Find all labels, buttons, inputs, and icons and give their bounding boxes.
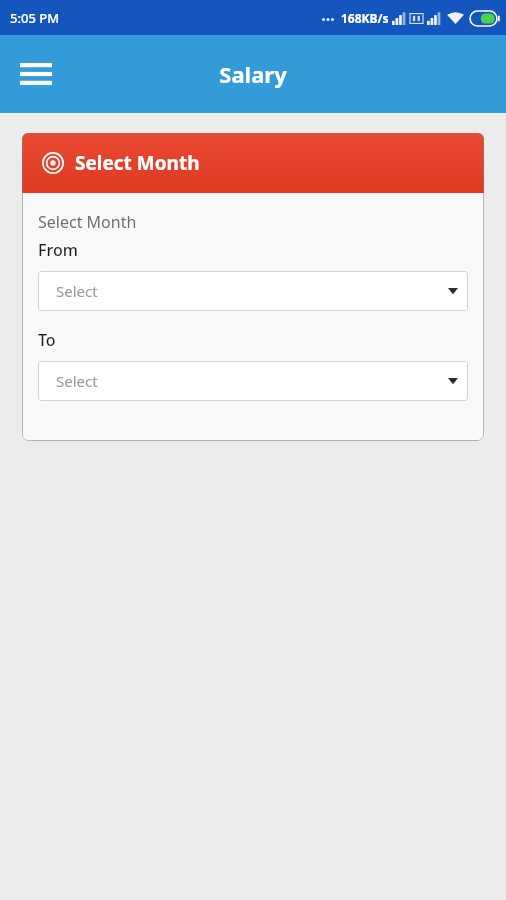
other: Select month bbox=[42, 152, 64, 174]
staticText: Select bbox=[56, 371, 98, 391]
staticText: 168KB/s bbox=[341, 10, 389, 26]
staticText: Select bbox=[56, 281, 98, 301]
staticText: 5:05 PM bbox=[10, 9, 60, 27]
staticText: Select Month bbox=[38, 211, 137, 233]
staticText: Salary bbox=[219, 59, 287, 89]
staticText: To bbox=[38, 329, 56, 351]
button[interactable]: Open navigation menu bbox=[14, 52, 58, 96]
button[interactable]: Select bbox=[38, 361, 468, 401]
staticText: From bbox=[38, 239, 78, 261]
staticText: Select Month bbox=[75, 150, 200, 176]
button[interactable]: Select bbox=[38, 271, 468, 311]
